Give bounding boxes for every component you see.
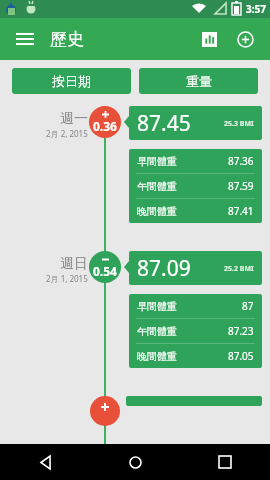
button[interactable]: Back	[0, 444, 90, 480]
staticText: 歷史	[50, 29, 84, 50]
button[interactable]: Recents	[180, 444, 270, 480]
staticText: 87.36	[228, 154, 254, 168]
staticText: 25.2 BMI	[224, 264, 254, 274]
button[interactable]: 晚間體重	[129, 199, 262, 223]
button[interactable]: 0.36	[89, 106, 121, 138]
button[interactable]: 重量	[139, 68, 258, 94]
staticText: 87.41	[228, 204, 254, 218]
staticText: 晚間體重	[137, 205, 177, 218]
button[interactable]: 87.45	[129, 106, 262, 140]
staticText: 晚間體重	[137, 350, 177, 363]
staticText: 2月 2, 2015	[46, 128, 88, 139]
button[interactable]: 午間體重	[129, 174, 262, 198]
staticText: 重量	[186, 73, 212, 89]
staticText: 3:57	[246, 2, 266, 16]
staticText: 早間體重	[137, 300, 177, 313]
staticText: 87.23	[228, 324, 254, 338]
staticText: 87	[242, 299, 254, 313]
button[interactable]: Add	[230, 24, 260, 54]
staticText: 2月 1, 2015	[46, 273, 88, 284]
button[interactable]: Menu	[10, 24, 40, 54]
staticText: 週日	[60, 255, 88, 273]
staticText: 午間體重	[137, 325, 177, 338]
button[interactable]: 0.54	[89, 251, 121, 283]
staticText: 87.59	[228, 179, 254, 193]
button[interactable]	[126, 396, 262, 406]
button[interactable]: 晚間體重	[129, 344, 262, 368]
button[interactable]: 87.09	[129, 251, 262, 285]
staticText: 週一	[60, 110, 88, 128]
staticText: 87.45	[137, 109, 191, 138]
staticText: 0.54	[93, 263, 117, 279]
button[interactable]: Home	[90, 444, 180, 480]
button[interactable]	[90, 396, 120, 426]
staticText: 按日期	[52, 73, 91, 89]
staticText: 87.05	[228, 349, 254, 363]
button[interactable]: 早間體重	[129, 294, 262, 318]
button[interactable]: Chart	[194, 24, 224, 54]
staticText: 午間體重	[137, 180, 177, 193]
button[interactable]: 按日期	[12, 68, 131, 94]
button[interactable]: 早間體重	[129, 149, 262, 173]
staticText: 0.36	[93, 118, 117, 134]
staticText: 早間體重	[137, 155, 177, 168]
staticText: 25.3 BMI	[224, 119, 254, 129]
button[interactable]: 午間體重	[129, 319, 262, 343]
staticText: 87.09	[137, 254, 191, 283]
